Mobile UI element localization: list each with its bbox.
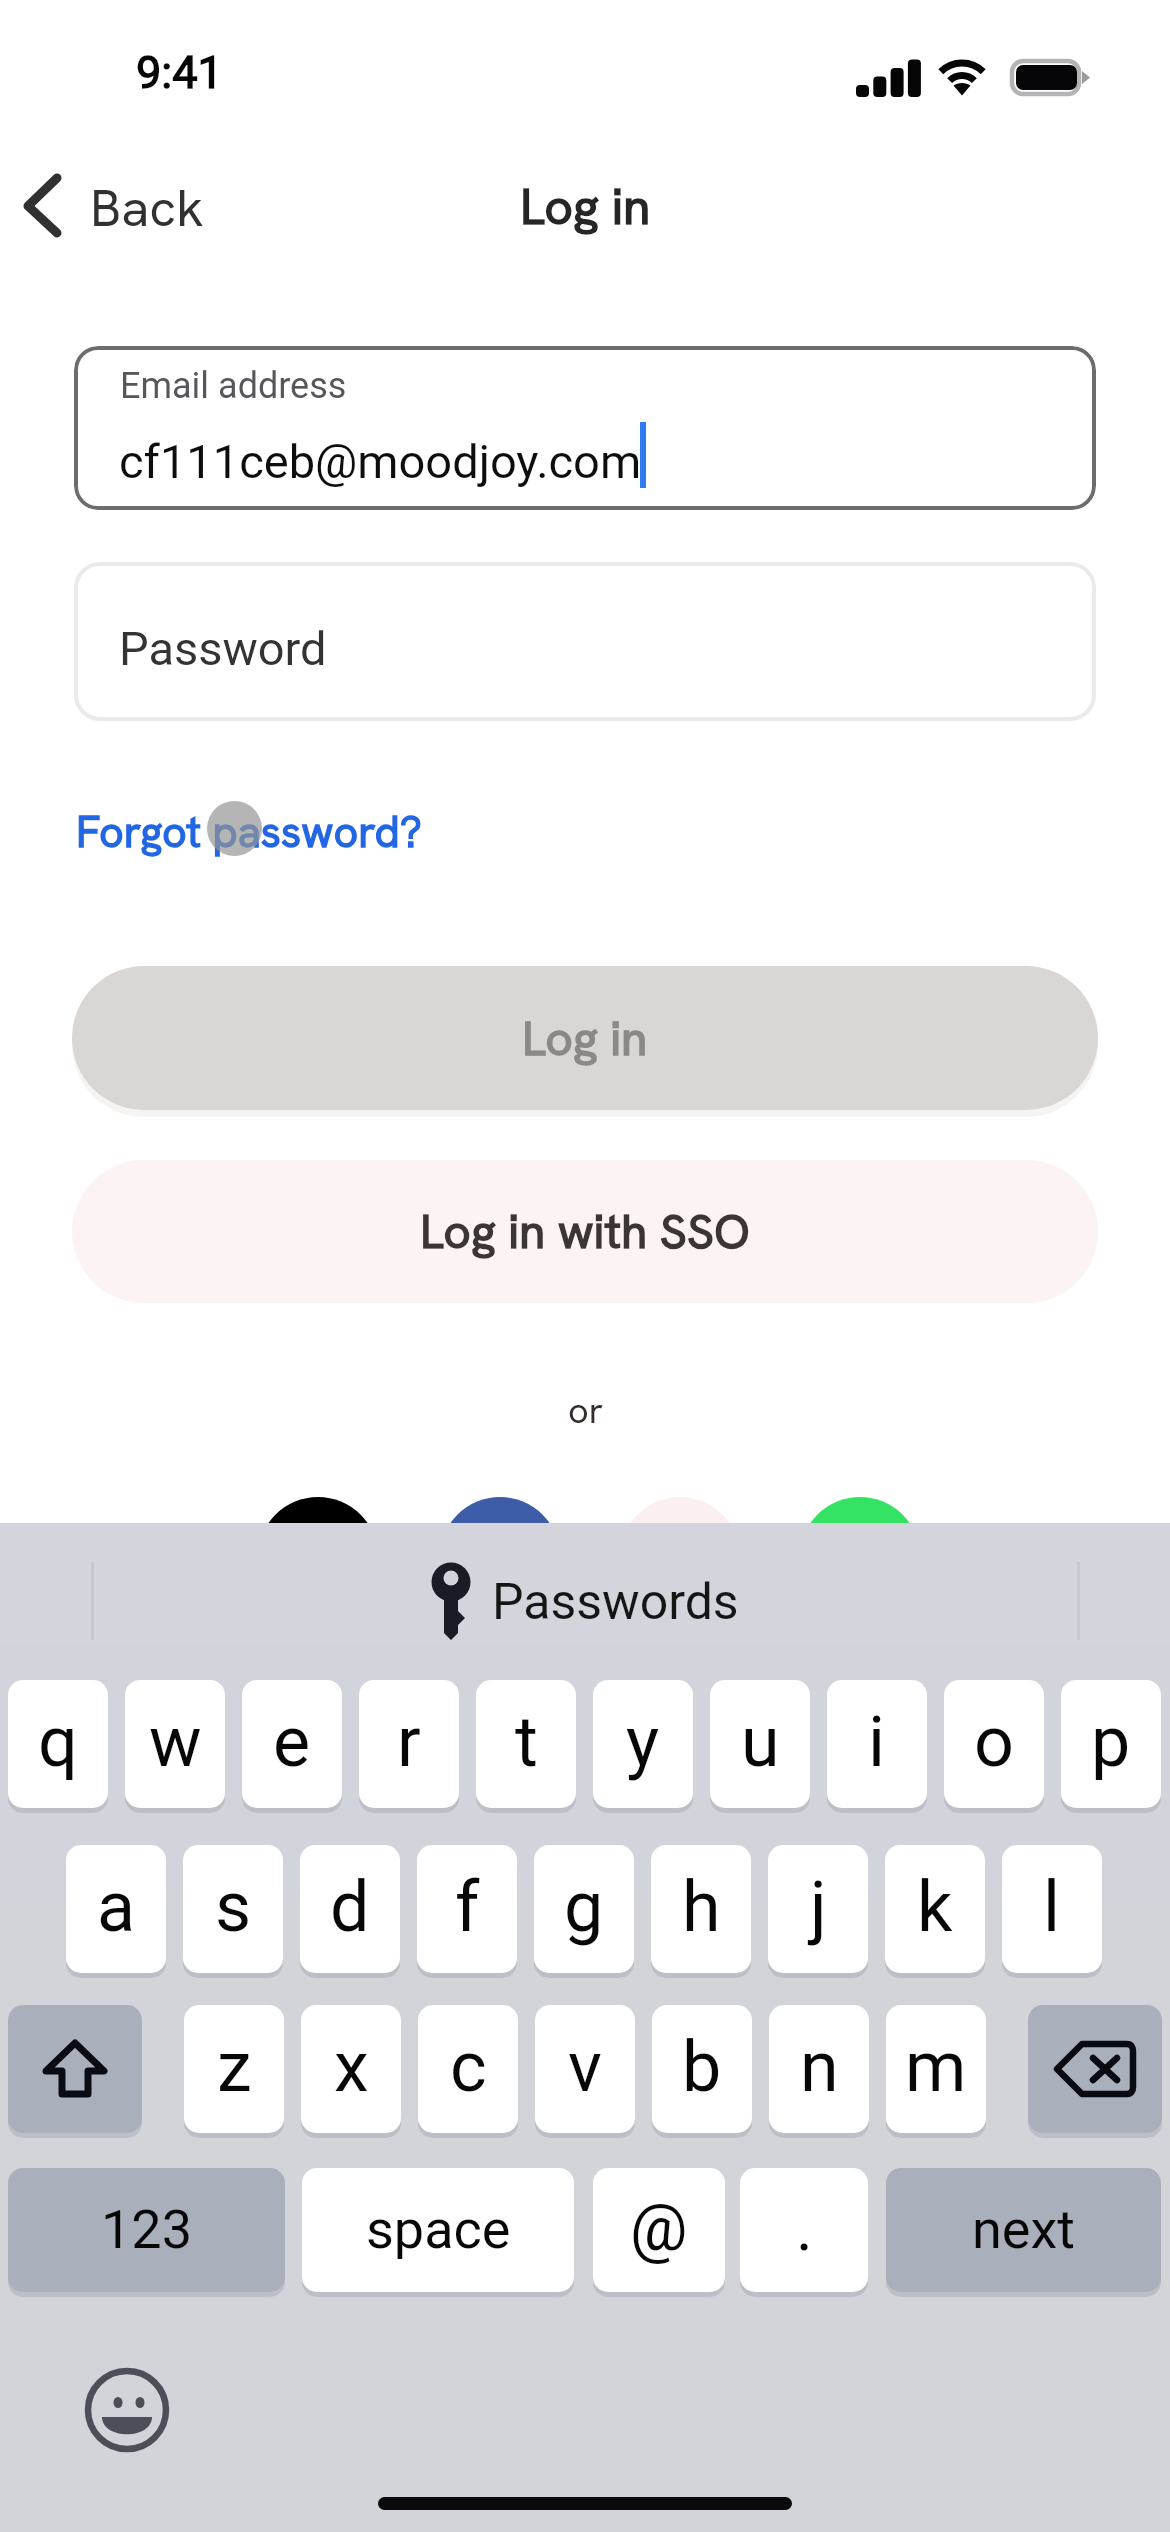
staticText: j — [810, 1866, 827, 1948]
button[interactable]: m — [886, 2005, 986, 2133]
button[interactable]: Continue with social account — [258, 1497, 378, 1617]
staticText: space — [366, 2198, 511, 2261]
staticText: s — [215, 1866, 252, 1948]
staticText: p — [1091, 1701, 1131, 1783]
button[interactable]: v — [535, 2005, 635, 2133]
staticText: d — [330, 1866, 370, 1948]
staticText: h — [682, 1866, 721, 1948]
staticText: v — [568, 2026, 602, 2108]
button[interactable]: Log in — [72, 966, 1098, 1110]
staticText: o — [974, 1701, 1014, 1783]
staticText: l — [1043, 1866, 1061, 1948]
button[interactable]: n — [769, 2005, 869, 2133]
button[interactable]: k — [885, 1845, 985, 1973]
staticText: Forgot password? — [76, 804, 422, 860]
staticText: . — [796, 2191, 813, 2266]
button[interactable]: Email address — [74, 346, 1096, 510]
button[interactable]: x — [301, 2005, 401, 2133]
staticText: u — [741, 1701, 780, 1783]
button[interactable]: @ — [593, 2168, 725, 2292]
button[interactable]: e — [242, 1680, 342, 1808]
staticText: g — [564, 1866, 604, 1948]
button[interactable]: c — [418, 2005, 518, 2133]
button[interactable]: o — [944, 1680, 1044, 1808]
button[interactable]: space — [302, 2168, 574, 2292]
button[interactable]: d — [300, 1845, 400, 1973]
staticText: or — [568, 1387, 604, 1434]
staticText: 123 — [101, 2198, 193, 2261]
staticText: Password — [119, 621, 327, 676]
button[interactable]: Log in with SSO — [72, 1160, 1098, 1303]
staticText: cf111ceb@moodjoy.com — [119, 434, 642, 489]
staticText: Email address — [120, 365, 347, 407]
button[interactable]: Password — [74, 562, 1096, 721]
staticText: Log in — [520, 174, 651, 239]
staticText: m — [905, 2026, 967, 2108]
button[interactable]: next — [886, 2168, 1161, 2292]
staticText: e — [273, 1701, 311, 1783]
button[interactable]: Continue with social account — [440, 1497, 560, 1617]
button[interactable]: f — [417, 1845, 517, 1973]
staticText: q — [38, 1701, 78, 1783]
button[interactable]: l — [1002, 1845, 1102, 1973]
button[interactable]: p — [1061, 1680, 1161, 1808]
button[interactable]: i — [827, 1680, 927, 1808]
button[interactable]: a — [66, 1845, 166, 1973]
button[interactable]: z — [184, 2005, 284, 2133]
button[interactable]: w — [125, 1680, 225, 1808]
button[interactable]: Passwords — [0, 1559, 1170, 1645]
staticText: c — [450, 2026, 487, 2108]
button[interactable]: s — [183, 1845, 283, 1973]
button[interactable]: . — [740, 2168, 868, 2292]
button[interactable]: q — [8, 1680, 108, 1808]
button[interactable]: Backspace — [1028, 2005, 1162, 2133]
staticText: next — [972, 2198, 1075, 2261]
staticText: Passwords — [492, 1573, 739, 1632]
button[interactable]: u — [710, 1680, 810, 1808]
staticText: n — [800, 2026, 839, 2108]
button[interactable]: h — [651, 1845, 751, 1973]
staticText: b — [682, 2026, 722, 2108]
button[interactable]: Forgot password? — [66, 794, 419, 866]
button[interactable]: g — [534, 1845, 634, 1973]
staticText: Back — [90, 174, 204, 242]
staticText: i — [868, 1701, 886, 1783]
staticText: y — [626, 1701, 660, 1783]
staticText: Log in — [522, 1007, 648, 1070]
staticText: @ — [630, 2191, 688, 2266]
staticText: f — [455, 1866, 480, 1948]
button[interactable]: t — [476, 1680, 576, 1808]
button[interactable]: 123 — [8, 2168, 285, 2292]
staticText: Log in with SSO — [420, 1200, 750, 1263]
button[interactable]: Shift — [8, 2005, 142, 2133]
staticText: k — [917, 1866, 953, 1948]
button[interactable]: Back — [10, 160, 240, 260]
button[interactable]: Continue with social account — [800, 1497, 920, 1617]
button[interactable]: Emoji keyboard — [85, 2368, 169, 2452]
staticText: w — [149, 1701, 202, 1783]
staticText: t — [515, 1701, 538, 1783]
staticText: 9:41 — [136, 46, 223, 99]
staticText: r — [397, 1701, 421, 1783]
button[interactable]: r — [359, 1680, 459, 1808]
button[interactable]: y — [593, 1680, 693, 1808]
button[interactable]: j — [768, 1845, 868, 1973]
staticText: z — [217, 2026, 252, 2108]
staticText: x — [334, 2026, 369, 2108]
staticText: a — [97, 1866, 136, 1948]
button[interactable]: Continue with social account — [620, 1497, 740, 1617]
button[interactable]: b — [652, 2005, 752, 2133]
